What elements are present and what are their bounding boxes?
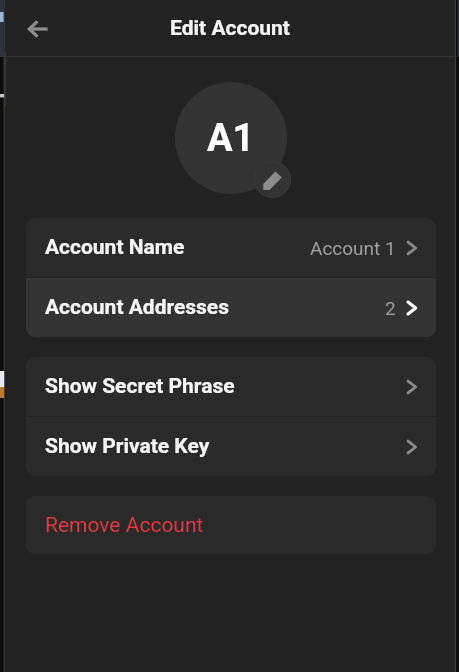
staticText: Show Private Key (45, 434, 210, 459)
button[interactable]: Remove Account (26, 496, 436, 554)
staticText: Account Addresses (45, 295, 229, 320)
staticText: Remove Account (45, 513, 204, 538)
button[interactable]: Account Name (26, 218, 436, 277)
button[interactable]: Account avatar (175, 82, 287, 194)
staticText: Edit Account (170, 16, 290, 41)
staticText: A1 (207, 116, 255, 161)
button[interactable]: Back (13, 5, 61, 53)
staticText: Show Secret Phrase (45, 374, 235, 399)
staticText: 2 (385, 297, 396, 319)
staticText: Account Name (45, 235, 185, 260)
button[interactable]: Show Private Key (26, 417, 436, 476)
staticText: Account 1 (310, 237, 396, 259)
button[interactable]: Account Addresses (26, 278, 436, 337)
button[interactable]: Edit account name (254, 161, 291, 198)
button[interactable]: Show Secret Phrase (26, 357, 436, 416)
